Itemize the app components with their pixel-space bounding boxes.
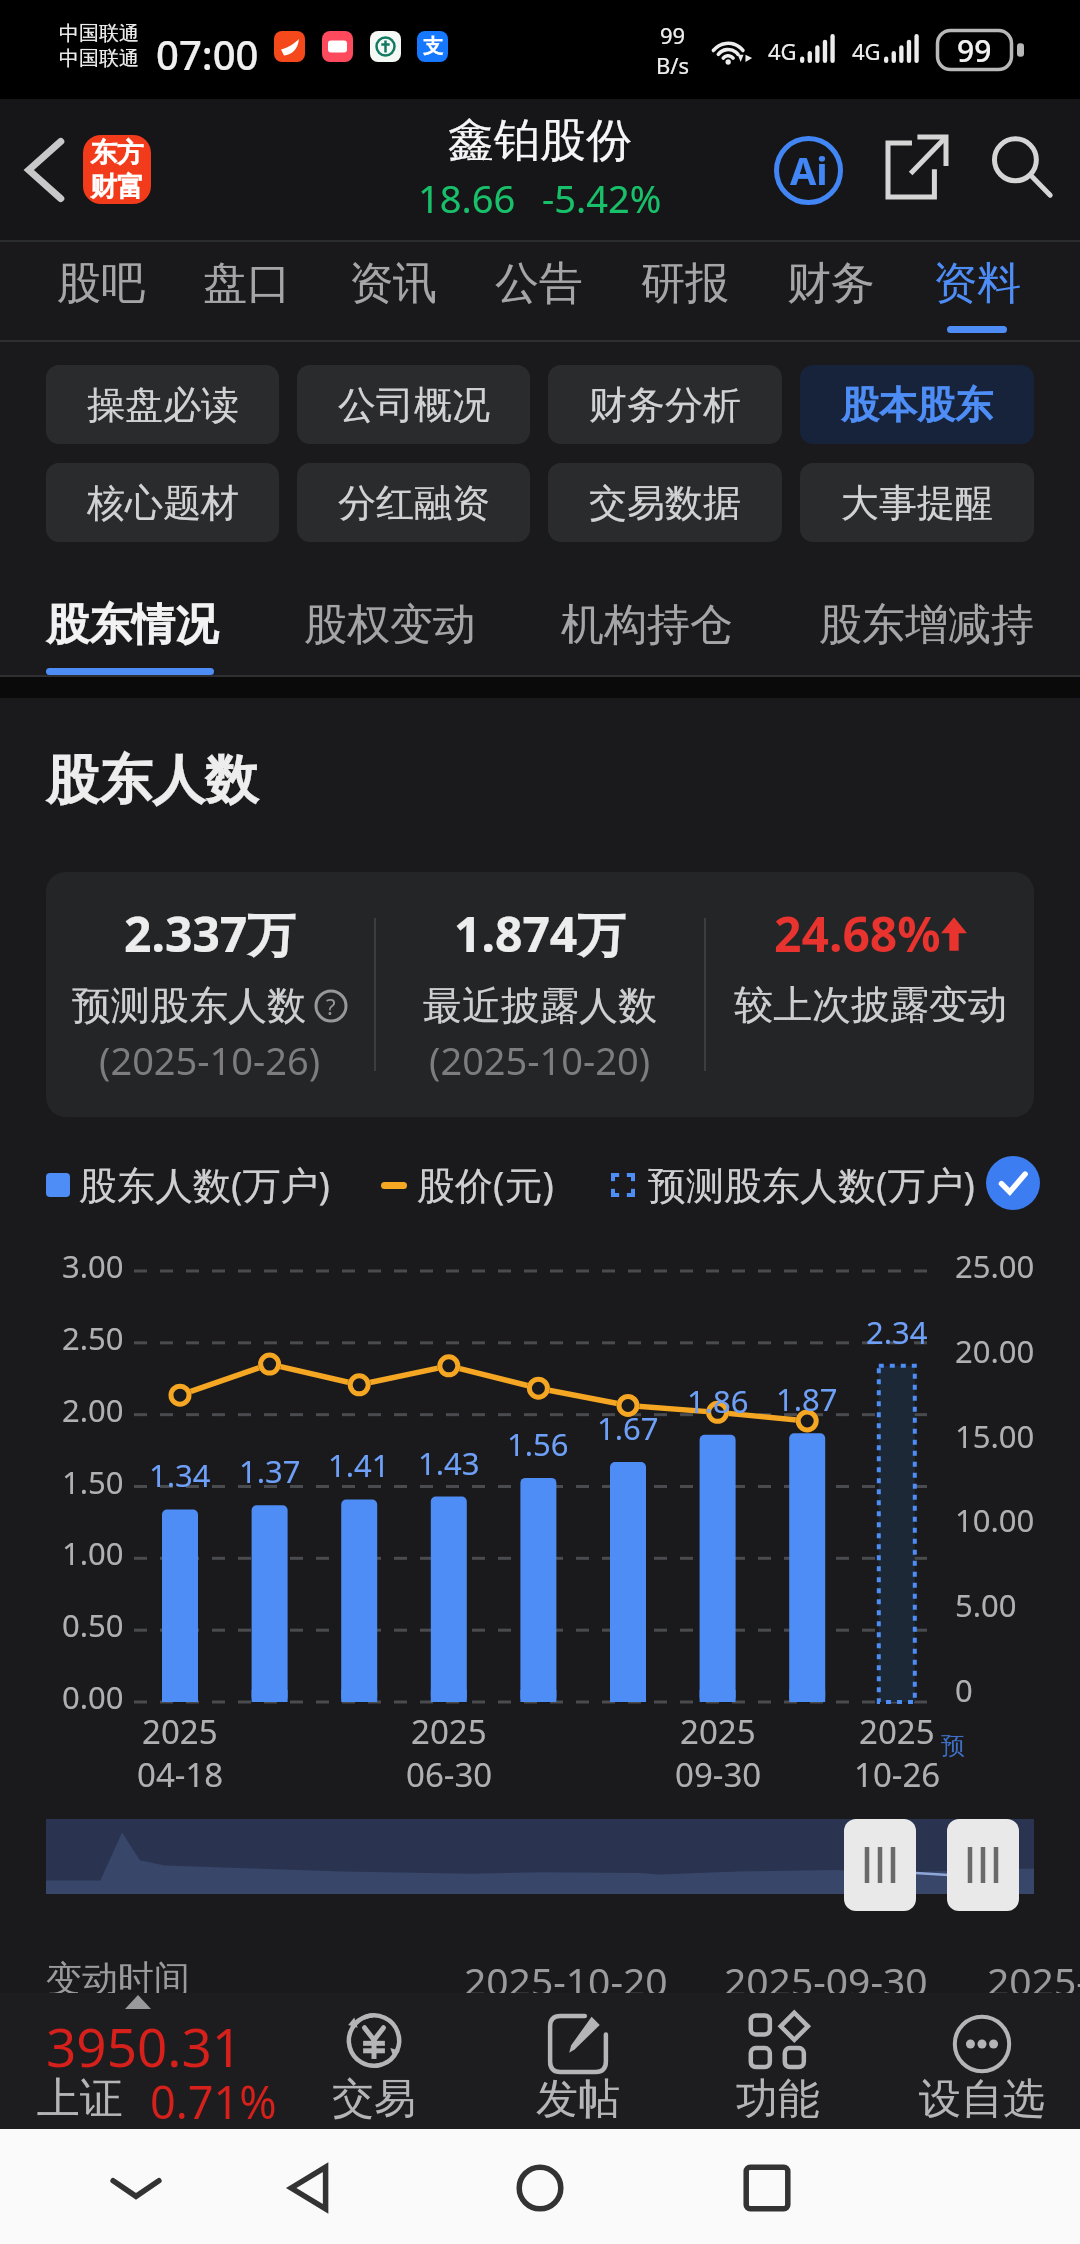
staticText: 1.41 — [328, 1444, 390, 1486]
staticText: Ai — [790, 144, 828, 196]
staticText: 1.87 — [776, 1378, 838, 1420]
button[interactable]: 交易 — [274, 1993, 474, 2129]
staticText: 鑫铂股份 — [448, 112, 632, 170]
button[interactable]: 3950.31 — [10, 1993, 306, 2129]
staticText: 1.56 — [507, 1423, 569, 1465]
staticText: 25.00 — [955, 1245, 1035, 1287]
button[interactable]: 返回 — [264, 2142, 356, 2234]
staticText: B/s — [656, 50, 690, 80]
staticText: 股吧 — [57, 256, 145, 311]
staticText: 2025-10-20 — [464, 1954, 668, 2007]
staticText: (2025-10-20) — [429, 1034, 651, 1086]
staticText: 财务分析 — [589, 381, 741, 429]
staticText: 10.00 — [955, 1499, 1035, 1541]
staticText: 交易数据 — [589, 479, 741, 527]
staticText: -5.42% — [542, 172, 662, 224]
button[interactable]: 大事提醒 — [800, 463, 1034, 542]
staticText: 0 — [955, 1669, 973, 1711]
staticText: 研报 — [641, 256, 729, 311]
button[interactable]: 确认 — [986, 1156, 1040, 1210]
staticText: 股东人数 — [46, 747, 258, 814]
staticText: 交易 — [332, 2073, 416, 2126]
button[interactable]: 股东增减持 — [819, 562, 1034, 675]
staticText: 股东情况 — [46, 598, 218, 652]
button[interactable]: 操盘必读 — [46, 365, 279, 444]
staticText: 中国联通 — [59, 46, 139, 71]
staticText: 公司概况 — [338, 381, 490, 429]
staticText: 24.68% — [774, 901, 941, 966]
staticText: 10-26 — [854, 1752, 941, 1797]
button[interactable]: 收起 — [90, 2142, 182, 2234]
staticText: 0.00 — [62, 1676, 124, 1718]
staticText: 功能 — [736, 2073, 820, 2126]
staticText: 财务 — [787, 256, 875, 311]
button[interactable]: AI助手 — [762, 124, 855, 217]
button[interactable]: 资讯 — [320, 242, 466, 340]
button[interactable]: 范围调节 — [844, 1819, 916, 1911]
button[interactable]: 范围调节 — [947, 1819, 1019, 1911]
staticText: 机构持仓 — [561, 598, 733, 652]
button[interactable]: 研报 — [612, 242, 758, 340]
button[interactable]: 分红融资 — [297, 463, 530, 542]
button[interactable]: 分享 — [872, 122, 962, 212]
button[interactable]: 财务分析 — [548, 365, 782, 444]
button[interactable]: 设自选 — [882, 1993, 1080, 2129]
staticText: 2025 — [411, 1709, 487, 1754]
staticText: 变动时间 — [46, 1956, 190, 2001]
button[interactable]: 股本股东 — [800, 365, 1034, 444]
staticText: 1.67 — [597, 1407, 659, 1449]
staticText: 2.00 — [62, 1389, 124, 1431]
staticText: 06-30 — [406, 1752, 493, 1797]
staticText: 股本股东 — [841, 381, 993, 429]
button[interactable]: 盘口 — [174, 242, 320, 340]
button[interactable]: 核心题材 — [46, 463, 279, 542]
staticText: 公告 — [495, 256, 583, 311]
staticText: 较上次披露变动 — [734, 980, 1007, 1029]
staticText: 盘口 — [203, 256, 291, 311]
button[interactable]: 股吧 — [28, 242, 174, 340]
staticText: 2.34 — [866, 1311, 928, 1353]
button[interactable]: 交易数据 — [548, 463, 782, 542]
staticText: 3950.31 — [46, 2010, 243, 2082]
button[interactable]: 最近任务 — [721, 2142, 813, 2234]
button[interactable]: 公司概况 — [297, 365, 530, 444]
button[interactable]: 发帖 — [478, 1993, 678, 2129]
staticText: ? — [326, 991, 336, 1021]
staticText: 99 — [660, 20, 686, 50]
staticText: 2025 — [142, 1709, 218, 1754]
button[interactable]: 股东情况 — [46, 562, 218, 675]
staticText: 0.50 — [62, 1604, 124, 1646]
staticText: 1.43 — [418, 1442, 480, 1484]
staticText: 4G — [768, 36, 797, 66]
staticText: 1.874万 — [454, 901, 626, 967]
staticText: 预测股东人数(万户) — [648, 1158, 975, 1210]
button[interactable]: 搜索 — [977, 122, 1067, 212]
staticText: 发帖 — [536, 2073, 620, 2126]
staticText: 04-18 — [137, 1752, 224, 1797]
staticText: 99 — [957, 30, 992, 71]
staticText: 东方 — [90, 136, 144, 170]
staticText: 中国联通 — [59, 21, 139, 46]
staticText: 预 — [941, 1731, 965, 1761]
button[interactable]: 公告 — [466, 242, 612, 340]
staticText: 核心题材 — [87, 479, 239, 527]
button[interactable]: 功能 — [678, 1993, 878, 2129]
staticText: 18.66 — [418, 172, 516, 224]
button[interactable]: 股权变动 — [304, 562, 476, 675]
button[interactable]: 主页 — [494, 2142, 586, 2234]
button[interactable]: 资料 — [904, 242, 1050, 340]
button[interactable]: 返回 — [8, 134, 80, 206]
staticText: 1.00 — [62, 1532, 124, 1574]
staticText: 股价(元) — [417, 1158, 554, 1210]
staticText: 2025 — [859, 1709, 935, 1754]
staticText: 15.00 — [955, 1415, 1035, 1457]
staticText: 设自选 — [919, 2073, 1045, 2126]
button[interactable]: 机构持仓 — [561, 562, 733, 675]
button[interactable]: 东方 — [83, 135, 151, 204]
staticText: 1.34 — [149, 1454, 211, 1496]
staticText: 4G — [852, 36, 881, 66]
staticText: 大事提醒 — [841, 479, 993, 527]
staticText: 股权变动 — [304, 598, 476, 652]
button[interactable]: 财务 — [758, 242, 904, 340]
staticText: 财富 — [90, 170, 144, 204]
